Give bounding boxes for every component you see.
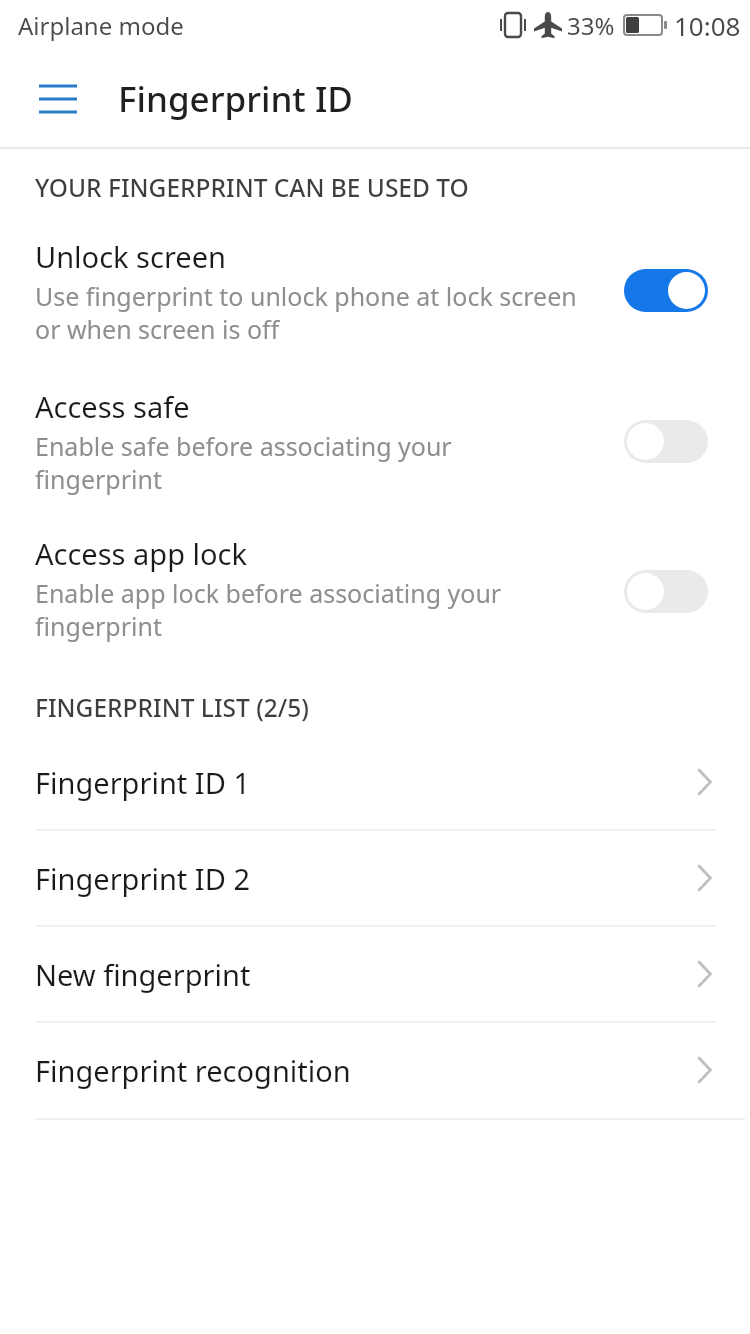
staticText: New fingerprint (35, 955, 251, 994)
button[interactable]: Fingerprint ID 2 (0, 830, 750, 926)
staticText: Airplane mode (18, 9, 184, 42)
staticText: 10:08 (674, 8, 741, 43)
button[interactable] (624, 570, 708, 613)
staticText: YOUR FINGERPRINT CAN BE USED TO (35, 171, 469, 204)
staticText: Enable app lock before associating your … (35, 576, 610, 643)
button[interactable]: Fingerprint ID 1 (0, 734, 750, 830)
staticText: Fingerprint ID (118, 75, 353, 123)
button[interactable]: Access safe (0, 387, 750, 497)
button[interactable] (39, 84, 77, 114)
button[interactable]: New fingerprint (0, 926, 750, 1022)
staticText: 33% (567, 9, 615, 42)
staticText: Fingerprint ID 1 (35, 763, 250, 802)
staticText: Access safe (35, 387, 190, 426)
button[interactable]: Unlock screen (0, 237, 750, 347)
button[interactable]: Access app lock (0, 534, 750, 644)
staticText: Unlock screen (35, 237, 226, 276)
button[interactable] (624, 420, 708, 463)
staticText: Fingerprint ID 2 (35, 859, 250, 898)
staticText: Fingerprint recognition (35, 1051, 351, 1090)
staticText: Enable safe before associating your fing… (35, 429, 610, 496)
button[interactable] (624, 269, 708, 312)
staticText: Use fingerprint to unlock phone at lock … (35, 279, 610, 346)
staticText: Access app lock (35, 534, 247, 573)
button[interactable]: Fingerprint recognition (0, 1022, 750, 1118)
staticText: FINGERPRINT LIST (2/5) (35, 691, 309, 724)
